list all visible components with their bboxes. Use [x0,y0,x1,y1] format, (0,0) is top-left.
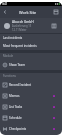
button[interactable]: Schedule [0,112,62,123]
staticText: 9:41 [2,2,8,6]
staticText: Last incidents [3,36,23,40]
staticText: Checkpoints [9,127,27,131]
staticText: List Tasks [9,105,23,109]
staticText: Show Team [9,63,26,67]
button[interactable]: Memos [0,90,62,101]
button[interactable]: Last incidents [0,34,62,42]
button[interactable]: Menu [51,7,61,17]
staticText: Module [3,54,13,58]
staticText: Memos [9,94,20,98]
staticText: 12.11 Meter [12,28,27,32]
button[interactable]: Open map [51,23,57,29]
button[interactable]: Back [0,7,10,17]
button[interactable]: Record Incident [0,79,62,90]
button[interactable]: Abucch GmbH [0,18,62,33]
staticText: Schedule [9,116,22,120]
staticText: Record Incident [9,83,32,87]
button[interactable]: Most frequent incidents [0,42,62,50]
staticText: Functions [3,74,16,78]
button[interactable]: Checkpoints [0,123,62,134]
staticText: Auslieferung 15 [12,24,32,28]
button[interactable]: List Tasks [0,101,62,112]
staticText: Abucch GmbH [12,20,34,24]
staticText: Work Site [19,10,37,15]
button[interactable]: Show Team [0,59,62,70]
staticText: Most frequent incidents [3,44,37,48]
